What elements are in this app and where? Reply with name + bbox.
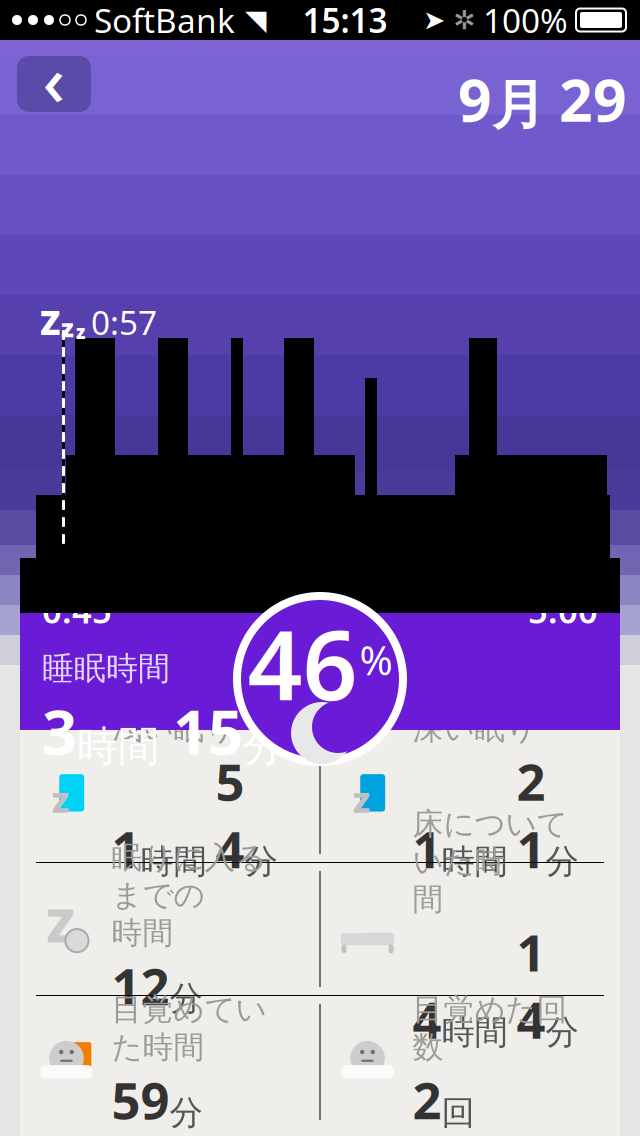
button[interactable]: Back (17, 56, 91, 112)
staticText (507, 1008, 516, 1053)
staticText: 5:00 (528, 587, 598, 633)
staticText: 3 (42, 690, 77, 772)
staticText: 浅い眠り (111, 710, 235, 748)
staticText: 21 (516, 747, 545, 882)
staticText: 15 (173, 690, 243, 772)
button[interactable]: 目覚めていた時間 (19, 996, 319, 1128)
staticText: 睡眠時間 (42, 649, 170, 688)
staticText: ‹ (42, 33, 65, 125)
button[interactable]: Z (320, 730, 620, 862)
staticText: 15:13 (302, 0, 387, 42)
staticText: 0:57 (91, 300, 157, 344)
staticText (206, 838, 215, 882)
staticText: 目覚めていた時間 (111, 991, 266, 1066)
staticText: 間 (412, 880, 443, 918)
staticText: 1 (412, 815, 441, 882)
staticText: Z (52, 784, 68, 820)
staticText: z (76, 319, 85, 344)
button[interactable]: 目覚めた回数 (320, 996, 620, 1128)
staticText: 59 (111, 1066, 169, 1133)
staticText (507, 838, 516, 882)
staticText: 時間 (77, 721, 159, 772)
staticText: 時間 (441, 1012, 507, 1053)
button[interactable]: Z (19, 730, 319, 862)
staticText: 月 (492, 72, 545, 138)
staticText: Z (46, 893, 75, 955)
staticText: ✲ (453, 5, 475, 35)
staticText: 0:45 (42, 587, 112, 633)
staticText: Z (40, 300, 60, 344)
staticText: 14 (516, 918, 545, 1053)
staticText: Z (353, 784, 370, 821)
staticText: 分 (243, 721, 284, 772)
staticText: 時間 (111, 914, 173, 952)
staticText: 54 (215, 747, 244, 882)
staticText: 分 (244, 841, 277, 882)
staticText: 100% (483, 0, 568, 42)
staticText: 時間 (140, 841, 206, 882)
staticText: 床についていた時 (412, 805, 567, 880)
staticText: 回 (441, 1092, 474, 1133)
staticText: 4 (412, 985, 441, 1053)
staticText: 分 (169, 978, 202, 1019)
staticText: SoftBank (94, 0, 235, 42)
staticText: Z (353, 784, 369, 820)
button[interactable]: 床についていた時 (320, 863, 620, 995)
staticText: Z (52, 784, 69, 821)
staticText: 目覚めた回数 (412, 991, 567, 1066)
staticText: % (359, 633, 392, 686)
staticText: 29 (559, 60, 627, 138)
staticText: 眠りに入るまでの (111, 839, 266, 914)
staticText (545, 102, 559, 138)
staticText: 分 (545, 1012, 578, 1053)
staticText: 12 (111, 952, 169, 1019)
button[interactable]: Z (19, 863, 319, 995)
staticText: 分 (545, 841, 578, 882)
staticText: 2 (412, 1066, 441, 1133)
staticText: ➤ (423, 5, 445, 35)
staticText: 分 (169, 1092, 202, 1133)
staticText: 46 (247, 599, 357, 727)
staticText: ◥ (245, 4, 267, 36)
staticText: z (61, 311, 74, 344)
staticText: 時間 (441, 841, 507, 882)
staticText: 9 (458, 60, 492, 138)
staticText: 深い眠り (412, 710, 536, 748)
staticText: 1 (111, 815, 140, 882)
